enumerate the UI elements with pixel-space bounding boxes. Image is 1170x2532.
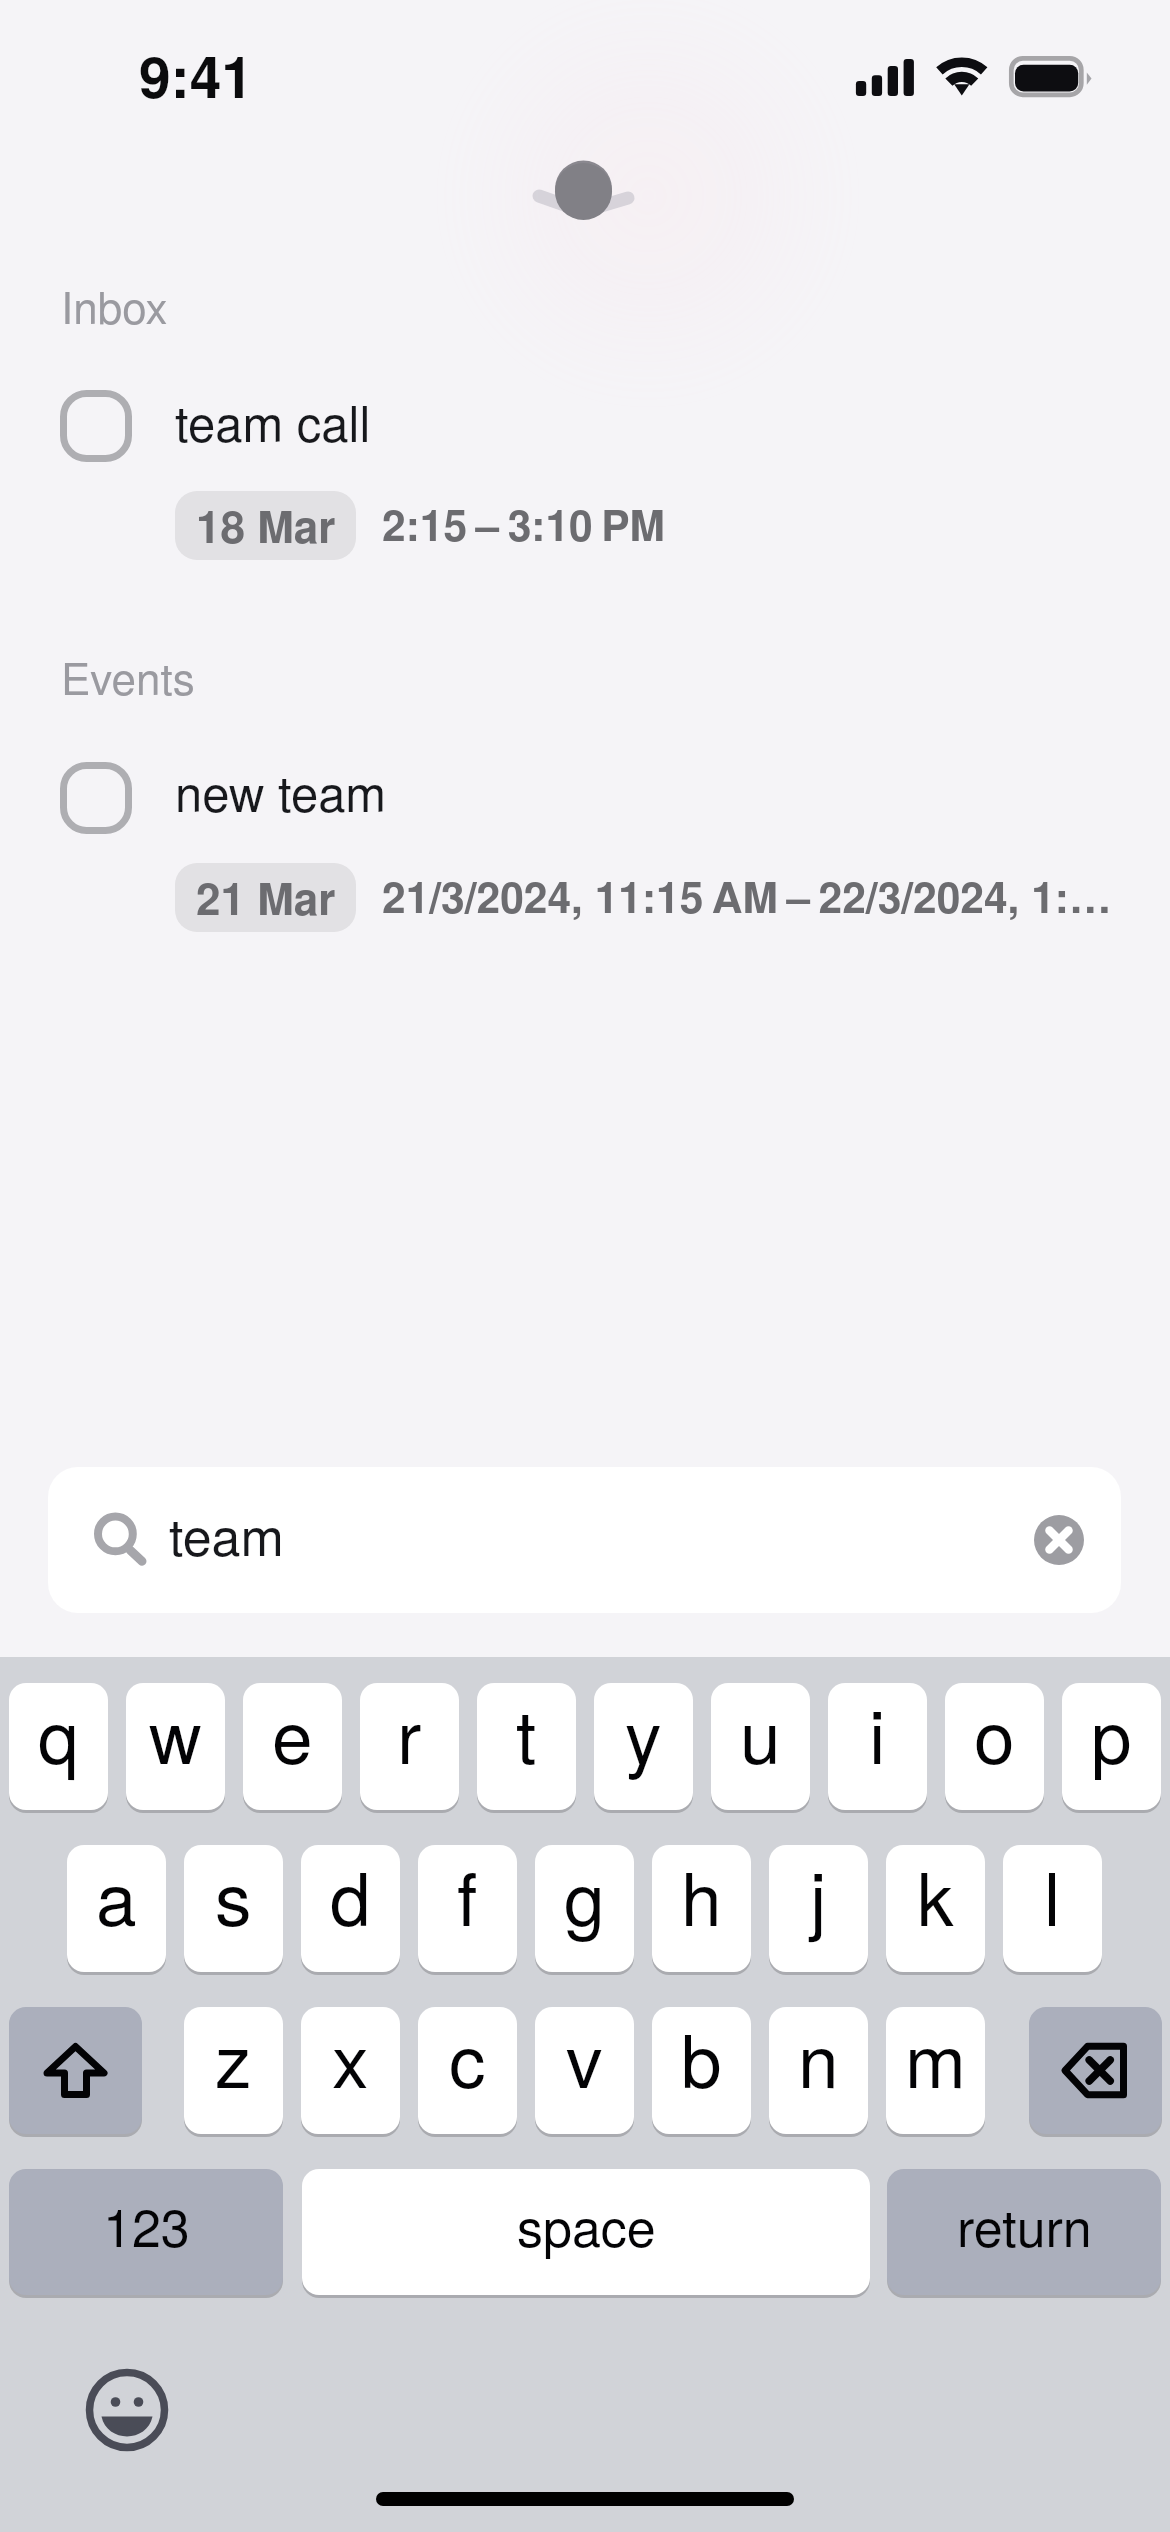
button[interactable]: w	[126, 1683, 225, 1810]
button[interactable]: x	[301, 2007, 400, 2134]
button[interactable]: Emoji keyboard	[86, 2369, 168, 2451]
staticText: space	[517, 2187, 656, 2261]
staticText: s	[215, 1845, 252, 1947]
button[interactable]: q	[9, 1683, 108, 1810]
button[interactable]: h	[652, 1845, 751, 1972]
staticText: a	[96, 1845, 137, 1947]
button[interactable]: Backspace	[1029, 2007, 1162, 2134]
button[interactable]: a	[67, 1845, 166, 1972]
staticText: 9:41	[139, 34, 254, 116]
staticText: q	[38, 1683, 79, 1785]
button[interactable]: c	[418, 2007, 517, 2134]
staticText: 123	[103, 2187, 190, 2261]
button[interactable]: s	[184, 1845, 283, 1972]
staticText: k	[917, 1845, 954, 1947]
button[interactable]: 21 Mar	[175, 863, 356, 932]
button[interactable]: b	[652, 2007, 751, 2134]
staticText: l	[1044, 1845, 1061, 1947]
button[interactable]: m	[886, 2007, 985, 2134]
staticText: c	[449, 2007, 486, 2109]
staticText: e	[272, 1683, 313, 1785]
staticText: p	[1091, 1683, 1132, 1785]
staticText: f	[457, 1845, 478, 1947]
staticText: Events	[61, 644, 195, 707]
staticText: w	[149, 1683, 202, 1785]
button[interactable]: return	[887, 2169, 1161, 2295]
staticText: o	[974, 1683, 1015, 1785]
button[interactable]: o	[945, 1683, 1044, 1810]
button[interactable]: j	[769, 1845, 868, 1972]
staticText: 18 Mar	[196, 493, 336, 556]
staticText: h	[681, 1845, 722, 1947]
staticText: r	[397, 1683, 422, 1785]
staticText: d	[330, 1845, 371, 1947]
button[interactable]: space	[302, 2169, 870, 2295]
staticText: team	[169, 1496, 284, 1570]
button[interactable]: u	[711, 1683, 810, 1810]
staticText: j	[810, 1845, 827, 1947]
staticText: g	[564, 1845, 605, 1947]
button[interactable]: f	[418, 1845, 517, 1972]
staticText: b	[681, 2007, 722, 2109]
staticText: 2:15 – 3:10 PM	[382, 493, 665, 554]
button[interactable]: l	[1003, 1845, 1102, 1972]
staticText: y	[625, 1683, 662, 1785]
button[interactable]: Toggle team call	[60, 390, 132, 462]
staticText: v	[566, 2007, 603, 2109]
staticText: Inbox	[61, 273, 168, 336]
button[interactable]: Clear text	[1034, 1515, 1084, 1565]
button[interactable]: g	[535, 1845, 634, 1972]
staticText: t	[516, 1683, 537, 1785]
button[interactable]: p	[1062, 1683, 1161, 1810]
button[interactable]: Toggle new team	[60, 762, 132, 834]
button[interactable]: Shift	[9, 2007, 142, 2134]
button[interactable]: 18 Mar	[175, 491, 356, 560]
staticText: 21 Mar	[196, 865, 336, 928]
staticText: return	[957, 2187, 1092, 2261]
button[interactable]: new team	[175, 756, 387, 826]
staticText: n	[798, 2007, 839, 2109]
button[interactable]: t	[477, 1683, 576, 1810]
button[interactable]: k	[886, 1845, 985, 1972]
button[interactable]: 123	[9, 2169, 283, 2295]
button[interactable]: team call	[175, 386, 371, 456]
staticText: x	[332, 2007, 369, 2109]
staticText: i	[869, 1683, 886, 1785]
staticText: z	[215, 2007, 252, 2109]
button[interactable]: team	[48, 1467, 1121, 1613]
button[interactable]: z	[184, 2007, 283, 2134]
staticText: 21/3/2024, 11:15 AM – 22/3/2024, 1:…	[382, 865, 1112, 926]
button[interactable]: r	[360, 1683, 459, 1810]
button[interactable]: d	[301, 1845, 400, 1972]
staticText: u	[740, 1683, 781, 1785]
button[interactable]: e	[243, 1683, 342, 1810]
button[interactable]: i	[828, 1683, 927, 1810]
button[interactable]: y	[594, 1683, 693, 1810]
staticText: m	[905, 2007, 966, 2109]
button[interactable]: n	[769, 2007, 868, 2134]
button[interactable]: v	[535, 2007, 634, 2134]
